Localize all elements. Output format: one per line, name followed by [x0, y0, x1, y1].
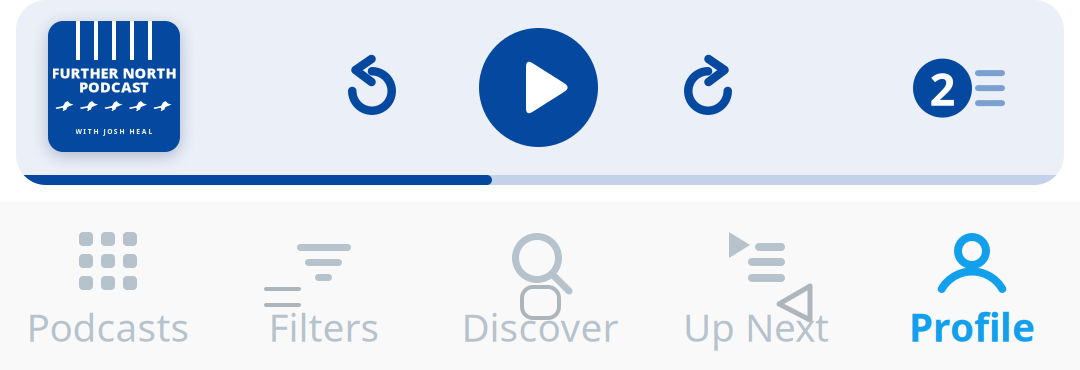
staticText: FURTHER NORTH [51, 63, 176, 82]
button[interactable]: Up Next [648, 202, 864, 370]
staticText: Up Next [683, 301, 829, 352]
button[interactable]: Up next queue, 2 episodes [913, 58, 1005, 118]
button[interactable]: Profile [864, 202, 1080, 370]
staticText: Podcasts [26, 301, 189, 352]
button[interactable]: Podcasts [0, 202, 216, 370]
staticText: Discover [461, 301, 618, 352]
button[interactable]: Filters [216, 202, 432, 370]
button[interactable]: Skip back [348, 57, 396, 115]
staticText: WITH JOSH HEAL [76, 127, 152, 136]
staticText: 2 [929, 58, 955, 118]
staticText: Profile [909, 301, 1035, 352]
button[interactable]: Play [479, 28, 598, 147]
staticText: PODCAST [79, 77, 149, 96]
staticText: Filters [268, 301, 379, 352]
button[interactable]: Discover [432, 202, 648, 370]
button[interactable]: Skip forward [684, 57, 732, 115]
